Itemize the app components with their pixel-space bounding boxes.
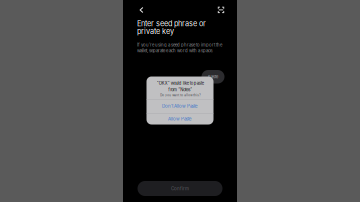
button[interactable]: Allow Paste	[146, 113, 213, 124]
staticText: Confirm	[171, 186, 189, 191]
staticText: Paste	[208, 74, 218, 79]
button[interactable]: Back	[133, 3, 149, 17]
staticText: If you’re using a seed phrase to import …	[137, 42, 222, 53]
staticText: Don’t Allow Paste	[162, 104, 198, 109]
staticText: Allow Paste	[168, 116, 192, 122]
staticText: Do you want to allow this?	[160, 93, 200, 97]
button[interactable]: Scan QR code	[213, 3, 229, 17]
button[interactable]: Don’t Allow Paste	[146, 99, 213, 113]
button[interactable]: Paste	[201, 70, 224, 83]
staticText: Enter seed phrase or private key	[137, 19, 206, 36]
staticText: “OKX” would like to paste from “Notes”	[156, 81, 203, 92]
button[interactable]: Confirm	[137, 181, 222, 196]
